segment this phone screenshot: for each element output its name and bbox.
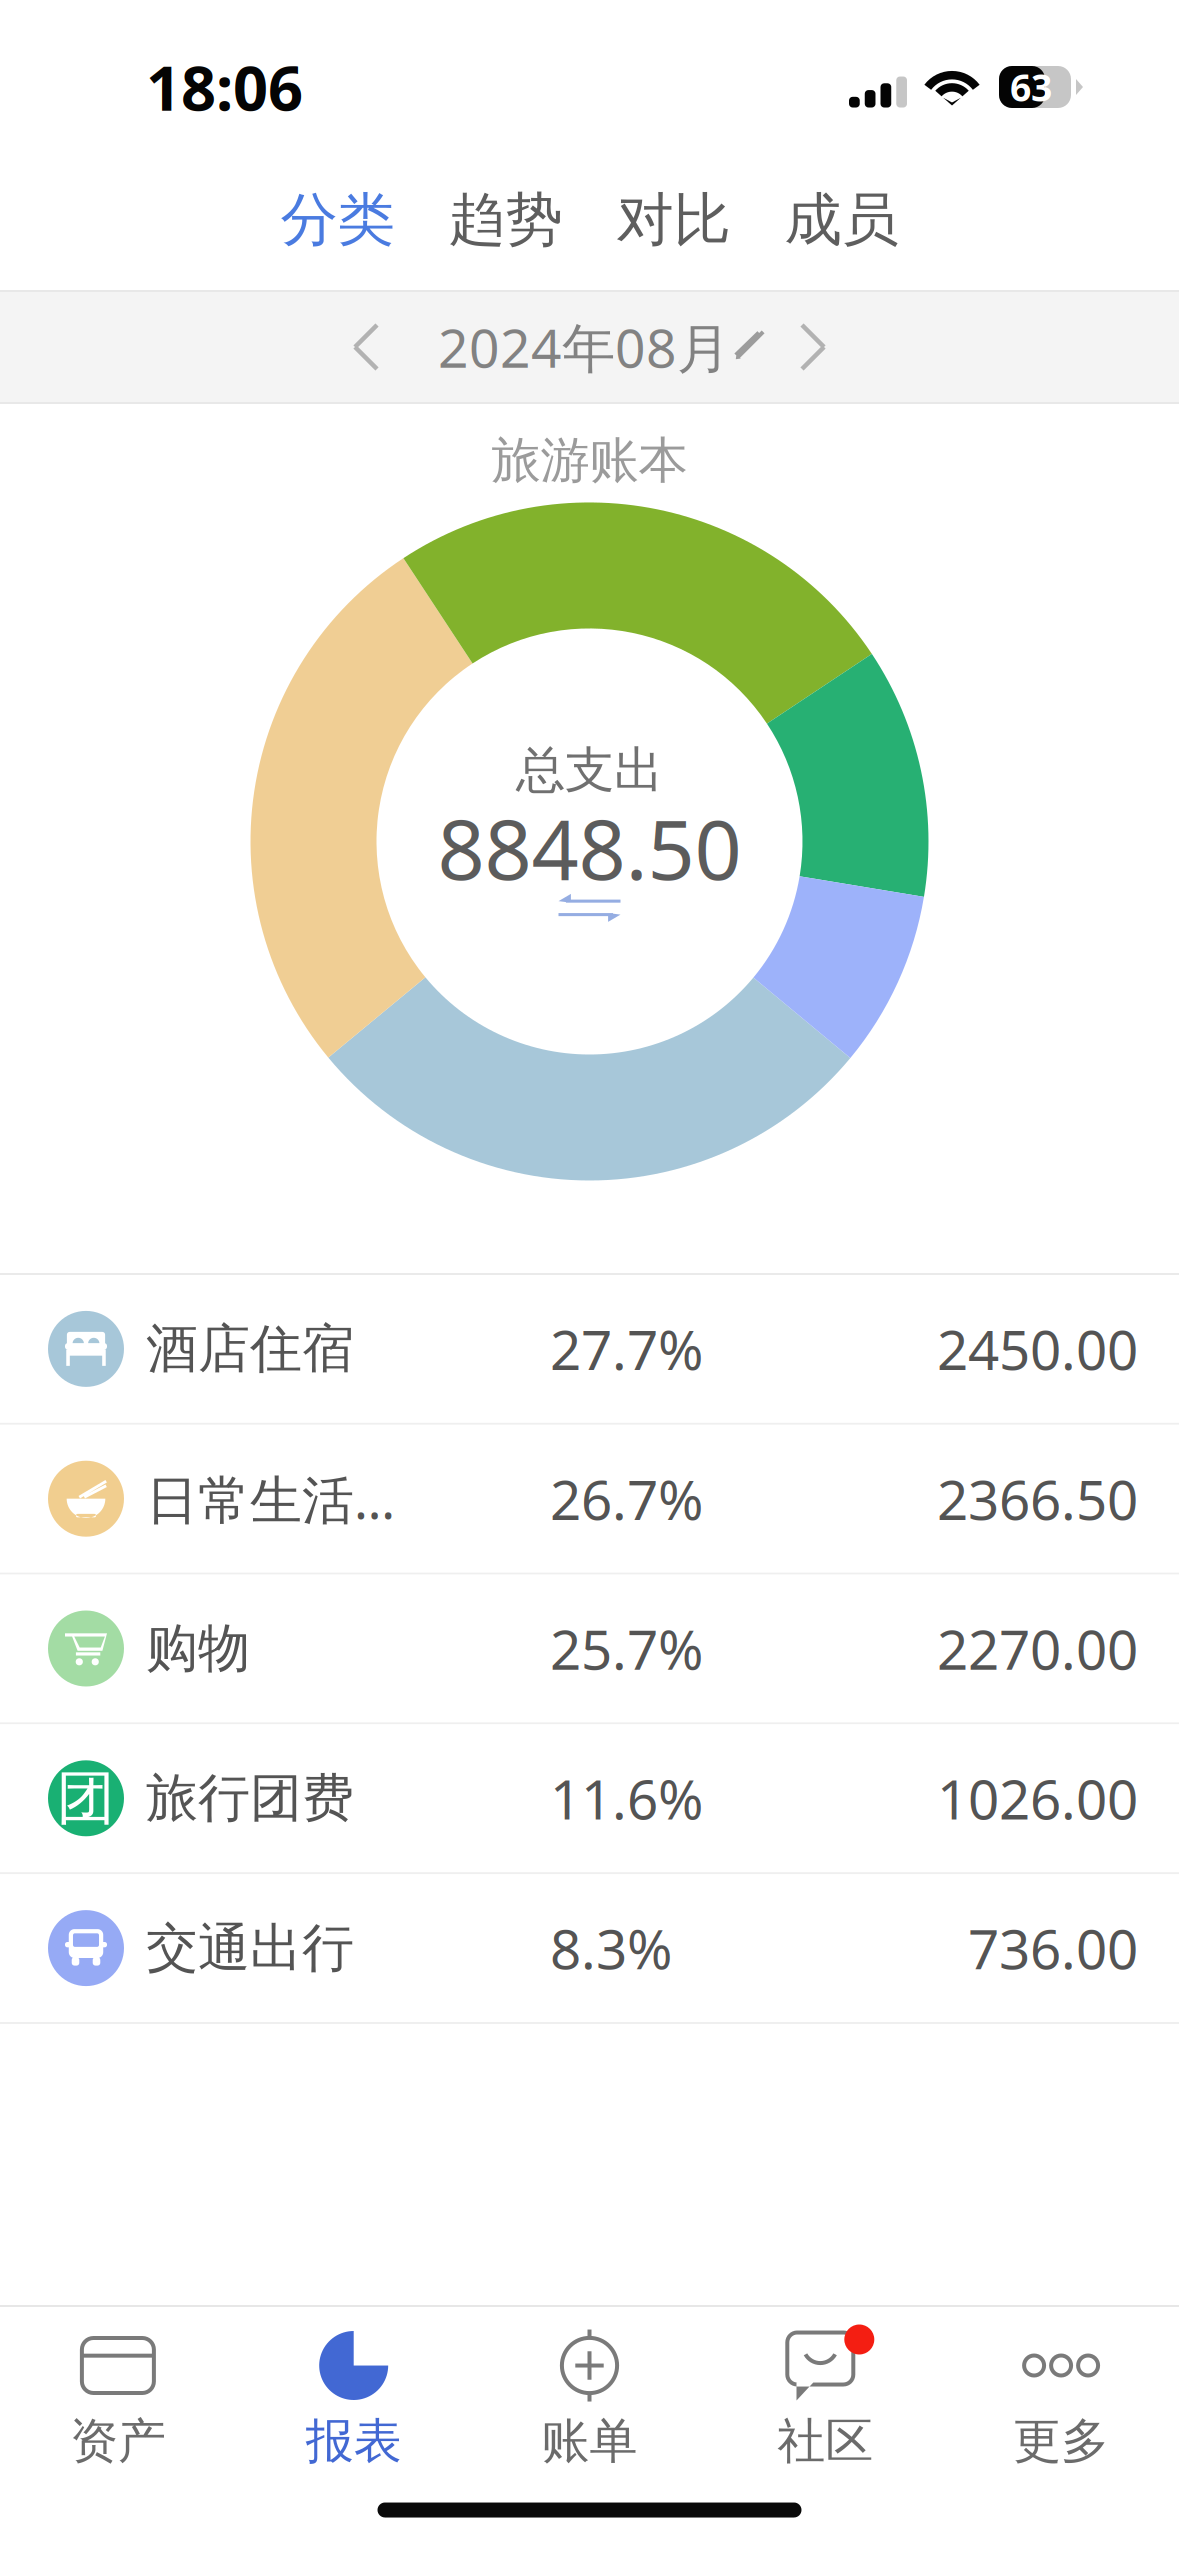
- button[interactable]: 分类: [253, 165, 421, 275]
- button[interactable]: Edit month: [730, 307, 766, 387]
- staticText: 分类: [280, 184, 394, 256]
- button[interactable]: 报表: [236, 2307, 472, 2473]
- button[interactable]: 更多: [943, 2307, 1179, 2473]
- button[interactable]: 酒店住宿: [0, 1275, 1179, 1423]
- staticText: 成员: [784, 184, 898, 256]
- button[interactable]: 社区: [707, 2307, 943, 2473]
- staticText: 社区: [777, 2411, 873, 2471]
- staticText: 旅游账本: [491, 429, 687, 491]
- staticText: 63: [1010, 62, 1052, 112]
- button[interactable]: Switch view: [538, 904, 640, 928]
- staticText: 日常生活…: [146, 1463, 395, 1534]
- staticText: 8.3%: [550, 1911, 672, 1985]
- staticText: 酒店住宿: [146, 1316, 354, 1382]
- staticText: 团: [56, 1761, 115, 1835]
- staticText: 交通出行: [146, 1915, 354, 1981]
- staticText: 2366.50: [937, 1461, 1138, 1536]
- staticText: 对比: [616, 184, 730, 256]
- button[interactable]: Next month: [766, 303, 846, 391]
- staticText: 更多: [1013, 2411, 1109, 2471]
- button[interactable]: Previous month: [333, 303, 438, 391]
- button[interactable]: 购物: [0, 1575, 1179, 1722]
- button[interactable]: 对比: [589, 165, 757, 275]
- staticText: 27.7%: [550, 1312, 703, 1386]
- button[interactable]: 账单: [472, 2307, 707, 2473]
- button[interactable]: 日常生活…: [0, 1425, 1179, 1573]
- staticText: 1026.00: [937, 1761, 1138, 1836]
- staticText: 旅行团费: [146, 1765, 354, 1831]
- button[interactable]: 资产: [0, 2307, 236, 2473]
- button[interactable]: 团: [0, 1724, 1179, 1872]
- staticText: 趋势: [448, 184, 562, 256]
- staticText: 8848.50: [437, 791, 741, 904]
- staticText: 736.00: [968, 1911, 1138, 1985]
- button[interactable]: 趋势: [421, 165, 589, 275]
- staticText: 总支出: [516, 739, 663, 801]
- staticText: 18:06: [146, 45, 303, 129]
- staticText: 报表: [306, 2411, 402, 2471]
- staticText: 2270.00: [937, 1611, 1138, 1686]
- staticText: 25.7%: [550, 1611, 703, 1686]
- staticText: 资产: [70, 2411, 166, 2471]
- staticText: 2024年08月: [438, 311, 730, 383]
- staticText: 2450.00: [937, 1312, 1138, 1386]
- staticText: 26.7%: [550, 1461, 703, 1536]
- button[interactable]: 交通出行: [0, 1874, 1179, 2022]
- staticText: 11.6%: [550, 1761, 703, 1836]
- staticText: 购物: [146, 1616, 250, 1681]
- button[interactable]: 成员: [757, 165, 925, 275]
- staticText: 账单: [541, 2411, 637, 2471]
